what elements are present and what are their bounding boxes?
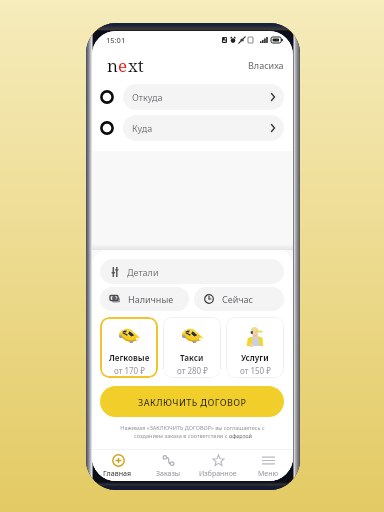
staticText: Куда (132, 122, 153, 134)
staticText: Легковые (109, 352, 150, 363)
staticText: Услуги (241, 352, 269, 363)
staticText: от 170 ₽ (114, 365, 145, 376)
button[interactable]: Куда (92, 115, 293, 141)
button[interactable]: Заказы (143, 450, 193, 481)
button[interactable]: n (107, 54, 144, 77)
staticText: Главная (103, 469, 132, 479)
staticText: xt (128, 54, 144, 77)
staticText: ЗАКЛЮЧИТЬ ДОГОВОР (138, 396, 247, 408)
button[interactable]: Детали (100, 259, 284, 284)
other: Главная (112, 454, 125, 467)
button[interactable]: Такси (163, 317, 221, 378)
button[interactable]: Легковые (100, 317, 158, 378)
staticText: n (107, 54, 118, 77)
staticText: Наличные (128, 293, 174, 305)
staticText: Сейчас (222, 293, 254, 305)
button[interactable]: Откуда (92, 84, 293, 110)
button[interactable]: Власиха (248, 59, 284, 71)
button[interactable]: Сейчас (194, 287, 284, 311)
staticText: Заказы (156, 469, 181, 479)
staticText: Такси (180, 352, 204, 363)
staticText: Нажимая «ЗАКЛЮЧИТЬ ДОГОВОР» вы соглашает… (120, 424, 265, 431)
button[interactable]: Меню (243, 450, 293, 481)
staticText: от 280 ₽ (177, 365, 208, 376)
button[interactable]: ЗАКЛЮЧИТЬ ДОГОВОР (100, 386, 284, 417)
staticText: созданием заказа в соответствии с (134, 432, 229, 439)
staticText: e (118, 54, 128, 77)
staticText: от 150 ₽ (240, 365, 271, 376)
staticText: Меню (258, 469, 279, 479)
button[interactable]: Избранное (193, 450, 243, 481)
button[interactable]: Услуги (226, 317, 284, 378)
staticText: Детали (127, 266, 159, 278)
button[interactable]: Главная (92, 450, 143, 481)
staticText: 15:01 (106, 35, 126, 45)
button[interactable]: Наличные (100, 287, 189, 311)
button[interactable]: офертой (229, 432, 252, 439)
staticText: Избранное (199, 469, 237, 479)
staticText: Откуда (132, 91, 163, 103)
